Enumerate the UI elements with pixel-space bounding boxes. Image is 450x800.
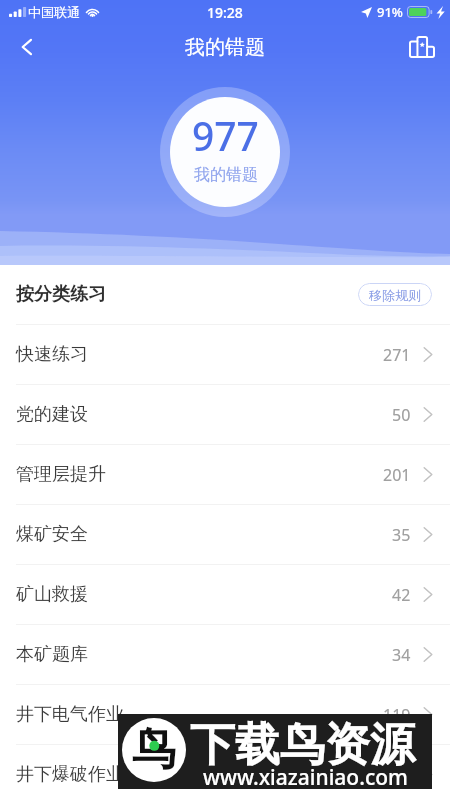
- staticText: 下载鸟资源: [190, 717, 415, 774]
- staticText: 我的错题: [194, 165, 258, 185]
- button[interactable]: 矿山救援: [0, 565, 450, 624]
- button[interactable]: 党的建设: [0, 385, 450, 444]
- staticText: 煤矿安全: [16, 523, 88, 546]
- button[interactable]: 煤矿安全: [0, 505, 450, 564]
- staticText: 201: [383, 464, 411, 486]
- staticText: 按分类练习: [16, 283, 106, 306]
- staticText: 34: [392, 644, 411, 666]
- button[interactable]: 快速练习: [0, 325, 450, 384]
- staticText: 中国联通: [28, 4, 80, 20]
- staticText: 本矿题库: [16, 643, 88, 666]
- staticText: 119: [383, 704, 411, 726]
- staticText: 35: [392, 524, 411, 546]
- staticText: 鸟: [132, 722, 176, 777]
- staticText: 19:28: [207, 3, 243, 22]
- button[interactable]: 井下爆破作业: [0, 745, 450, 800]
- button[interactable]: 井下电气作业: [0, 685, 450, 744]
- button[interactable]: 本矿题库: [0, 625, 450, 684]
- staticText: 我的错题: [185, 35, 265, 60]
- staticText: 矿山救援: [16, 583, 88, 606]
- staticText: 快速练习: [16, 343, 88, 366]
- staticText: 271: [383, 344, 411, 366]
- staticText: 42: [392, 584, 411, 606]
- staticText: 91%: [377, 3, 403, 21]
- staticText: 977: [192, 109, 259, 162]
- staticText: 井下爆破作业: [16, 763, 124, 786]
- button[interactable]: Leaderboard: [400, 25, 444, 69]
- staticText: 88: [392, 764, 411, 786]
- button[interactable]: Back: [5, 25, 49, 69]
- button[interactable]: 移除规则: [358, 283, 432, 306]
- staticText: www.xiazainiao.com: [203, 763, 408, 792]
- staticText: 管理层提升: [16, 463, 106, 486]
- staticText: 移除规则: [369, 287, 421, 303]
- staticText: 50: [392, 404, 411, 426]
- staticText: 党的建设: [16, 403, 88, 426]
- button[interactable]: 管理层提升: [0, 445, 450, 504]
- staticText: 井下电气作业: [16, 703, 124, 726]
